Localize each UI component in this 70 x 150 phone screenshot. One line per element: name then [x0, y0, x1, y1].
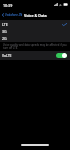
button[interactable]: Vodafone-IN: [0, 12, 25, 18]
staticText: Voice quality and data speeds may be aff…: [3, 43, 67, 49]
button[interactable]: VoLTE toggle: [56, 53, 67, 58]
staticText: 10:39: [3, 3, 13, 8]
button[interactable]: 3G: [0, 27, 70, 34]
button[interactable]: LTE: [0, 20, 70, 27]
staticText: Vodafone-IN: [5, 13, 23, 17]
staticText: Voice & Data: [24, 13, 47, 18]
staticText: LTE: [2, 22, 8, 27]
staticText: 2G: [2, 36, 7, 41]
staticText: 3G: [2, 29, 7, 34]
staticText: VoLTE: [2, 53, 12, 58]
button[interactable]: 2G: [0, 34, 70, 41]
button[interactable]: VoLTE: [0, 51, 70, 60]
